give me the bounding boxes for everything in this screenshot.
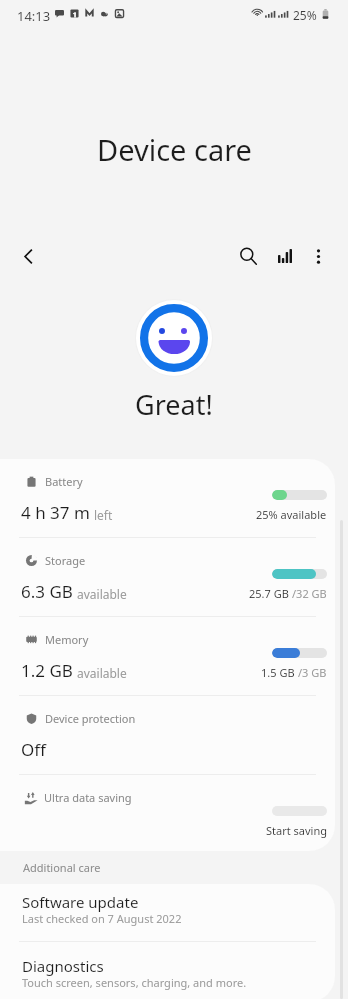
button[interactable]: Ultra data saving [0,775,335,851]
staticText: 25% [293,7,317,23]
staticText: 4 h 37 m [21,501,90,524]
button[interactable]: Battery [0,459,335,537]
staticText: left [94,507,113,523]
staticText: 1.2 GB [21,659,73,682]
button[interactable]: Search [231,239,265,273]
staticText: 1.5 GB [261,665,298,680]
staticText: 14:13 [17,7,51,25]
staticText: Off [21,738,46,761]
staticText: available [77,665,127,681]
staticText: /3 GB [298,665,327,680]
staticText: 6.3 GB [21,580,73,603]
staticText: Software update [22,892,139,912]
staticText: Storage [45,553,86,568]
staticText: Ultra data saving [44,790,132,805]
staticText: Start saving [266,823,327,838]
staticText: Memory [45,632,89,647]
button[interactable]: Device protection [0,696,335,774]
staticText: Touch screen, sensors, charging, and mor… [22,975,247,990]
button[interactable]: Software update [0,884,335,941]
staticText: 25.7 GB [249,586,292,601]
staticText: Battery [45,474,83,489]
staticText: Device protection [45,711,136,726]
button[interactable]: Memory [0,617,335,695]
button[interactable]: Storage [0,538,335,616]
staticText: Device care [97,130,252,169]
button[interactable]: More options [301,239,335,273]
staticText: available [77,586,127,602]
staticText: Great! [135,386,213,423]
staticText: 25% available [256,507,327,522]
staticText: Diagnostics [22,956,104,976]
staticText: /32 GB [292,586,327,601]
staticText: Additional care [23,860,101,875]
button[interactable]: Usage statistics [268,239,302,273]
button[interactable]: Diagnostics [0,942,335,999]
button[interactable]: Navigate up [8,236,48,276]
staticText: Last checked on 7 August 2022 [22,911,182,926]
